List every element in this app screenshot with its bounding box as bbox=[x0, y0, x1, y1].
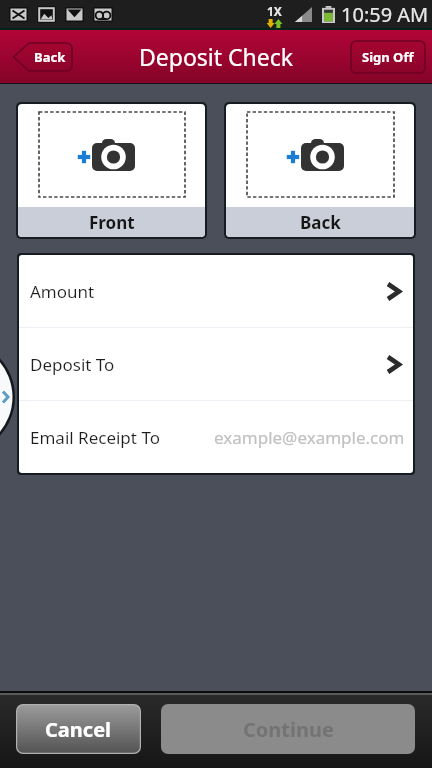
staticText: Back bbox=[300, 211, 341, 234]
staticText: Continue bbox=[243, 716, 334, 743]
button[interactable]: Sign Off bbox=[351, 41, 425, 73]
button[interactable]: Amount bbox=[19, 255, 413, 327]
staticText: Cancel bbox=[45, 716, 112, 743]
staticText: Front bbox=[89, 211, 135, 234]
staticText: 1X bbox=[267, 3, 282, 19]
button[interactable]: Cancel bbox=[16, 704, 141, 754]
button[interactable]: Continue bbox=[161, 704, 415, 754]
button[interactable]: Back bbox=[12, 42, 73, 72]
staticText: Deposit To bbox=[30, 353, 115, 376]
staticText: Amount bbox=[30, 280, 95, 303]
staticText: example@example.com bbox=[214, 426, 405, 449]
button[interactable]: Capture Front of check bbox=[18, 104, 205, 237]
button[interactable]: Open navigation drawer bbox=[0, 340, 15, 454]
button[interactable]: Deposit To bbox=[19, 328, 413, 400]
button[interactable]: Email Receipt To bbox=[19, 401, 413, 473]
staticText: Sign Off bbox=[362, 48, 414, 66]
staticText: Deposit Check bbox=[139, 41, 294, 72]
staticText: 10:59 AM bbox=[341, 1, 429, 28]
staticText: Email Receipt To bbox=[30, 426, 160, 449]
button[interactable]: Capture Back of check bbox=[226, 104, 414, 237]
staticText: Back bbox=[34, 48, 66, 66]
